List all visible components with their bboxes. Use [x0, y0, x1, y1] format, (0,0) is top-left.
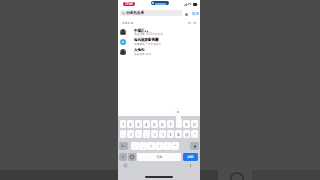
- button[interactable]: 换一换: [188, 21, 197, 24]
- staticText: 9: [185, 122, 188, 127]
- button[interactable]: 空格: [137, 153, 181, 161]
- button[interactable]: 6: [159, 120, 166, 128]
- button[interactable]: ¥: [167, 130, 174, 138]
- button[interactable]: ": [191, 130, 198, 138]
- staticText: 5: [153, 122, 156, 127]
- staticText: 4: [145, 122, 148, 127]
- staticText: 17:48: [125, 2, 133, 6]
- staticText: :: [138, 132, 139, 137]
- staticText: ): [162, 132, 164, 137]
- button[interactable]: 0: [191, 120, 198, 128]
- staticText: 大地先: [134, 48, 145, 52]
- button[interactable]: #+=: [119, 142, 128, 150]
- staticText: #+=: [121, 144, 126, 148]
- button[interactable]: 4: [143, 120, 150, 128]
- button[interactable]: -: [120, 130, 126, 138]
- staticText: ,: [143, 144, 144, 149]
- staticText: 中国正++: [134, 28, 149, 33]
- button[interactable]: !: [155, 142, 163, 150]
- staticText: .: [135, 144, 136, 149]
- staticText: /: [130, 132, 132, 137]
- button[interactable]: Dictation: [189, 164, 192, 167]
- button[interactable]: 9: [183, 120, 190, 128]
- staticText: !: [159, 144, 160, 149]
- staticText: (: [154, 132, 156, 137]
- button[interactable]: :: [135, 130, 142, 138]
- button[interactable]: ): [159, 130, 166, 138]
- button[interactable]: Emoji keyboard: [124, 164, 127, 167]
- staticText: -: [122, 132, 124, 137]
- button[interactable]: 中: [119, 153, 127, 161]
- button[interactable]: 搜索: [183, 153, 198, 161]
- button[interactable]: [175, 120, 182, 128]
- staticText: 7: [169, 122, 172, 127]
- staticText: 2: [129, 122, 132, 127]
- button[interactable]: 中国正++: [118, 28, 200, 38]
- staticText: 3: [137, 122, 140, 127]
- staticText: 取消: [192, 12, 200, 17]
- staticText: “: [174, 144, 176, 149]
- staticText: 动漫热血番: [126, 11, 144, 16]
- staticText: 空格: [156, 155, 163, 159]
- button[interactable]: &: [175, 130, 182, 138]
- staticText: 0: [193, 122, 196, 127]
- staticText: 1月新番推荐: [146, 42, 161, 46]
- staticText: 2023年最新番: [146, 32, 163, 36]
- staticText: 电玩旅家影视圈: [134, 38, 159, 42]
- staticText: 中: [121, 155, 125, 159]
- button[interactable]: 电玩旅家影视圈: [118, 38, 200, 48]
- button[interactable]: ?: [147, 142, 155, 150]
- staticText: 1: [122, 122, 125, 127]
- button[interactable]: @: [183, 130, 190, 138]
- staticText: ': [167, 144, 168, 149]
- staticText: 解说: [146, 52, 152, 55]
- staticText: ¥: [169, 132, 172, 137]
- button[interactable]: Clear search: [185, 13, 188, 16]
- button[interactable]: 5: [151, 120, 158, 128]
- button[interactable]: 动漫热血番: [120, 10, 182, 16]
- button[interactable]: Live activity: [151, 1, 169, 5]
- button[interactable]: Emoji: [128, 153, 136, 161]
- staticText: ;: [146, 132, 147, 137]
- staticText: 动漫解说: [134, 42, 145, 45]
- staticText: 搜索: [187, 155, 194, 159]
- staticText: 热血动漫: [134, 52, 145, 55]
- staticText: 6: [161, 122, 164, 127]
- button[interactable]: 2: [127, 120, 134, 128]
- button[interactable]: ,: [139, 142, 147, 150]
- button[interactable]: 1: [120, 120, 126, 128]
- button[interactable]: 大地先: [118, 48, 200, 58]
- button[interactable]: .: [131, 142, 139, 150]
- button[interactable]: Recording timer: [123, 2, 135, 6]
- button[interactable]: 7: [167, 120, 174, 128]
- button[interactable]: “: [171, 142, 179, 150]
- button[interactable]: 3: [135, 120, 142, 128]
- button[interactable]: 取消: [192, 12, 200, 17]
- staticText: &: [177, 132, 180, 137]
- staticText: 搜索发现: [122, 21, 134, 24]
- button[interactable]: Backspace: [190, 142, 199, 150]
- staticText: @: [185, 132, 189, 137]
- staticText: ?: [150, 144, 152, 149]
- button[interactable]: (: [151, 130, 158, 138]
- staticText: ": [194, 132, 196, 137]
- button[interactable]: /: [127, 130, 134, 138]
- staticText: 热血动漫: [134, 32, 145, 35]
- button[interactable]: ': [163, 142, 171, 150]
- button[interactable]: ;: [143, 130, 150, 138]
- staticText: 8: [177, 110, 180, 115]
